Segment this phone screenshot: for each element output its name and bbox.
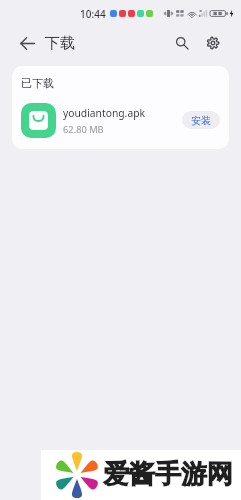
staticText: 安装 <box>191 114 211 127</box>
button[interactable]: Search <box>169 30 195 56</box>
button[interactable]: Settings <box>200 30 226 56</box>
staticText: 已下载 <box>21 76 54 90</box>
button[interactable]: youdiantong.apk <box>12 98 229 142</box>
staticText: 10:44 <box>80 7 106 21</box>
staticText: 下载 <box>45 34 75 53</box>
button[interactable]: 安装 <box>182 111 220 129</box>
staticText: youdiantong.apk <box>63 106 145 120</box>
staticText: 62.80 MB <box>63 123 104 136</box>
button[interactable]: Back <box>14 30 40 56</box>
staticText: 爱酱手游网 <box>103 458 233 491</box>
